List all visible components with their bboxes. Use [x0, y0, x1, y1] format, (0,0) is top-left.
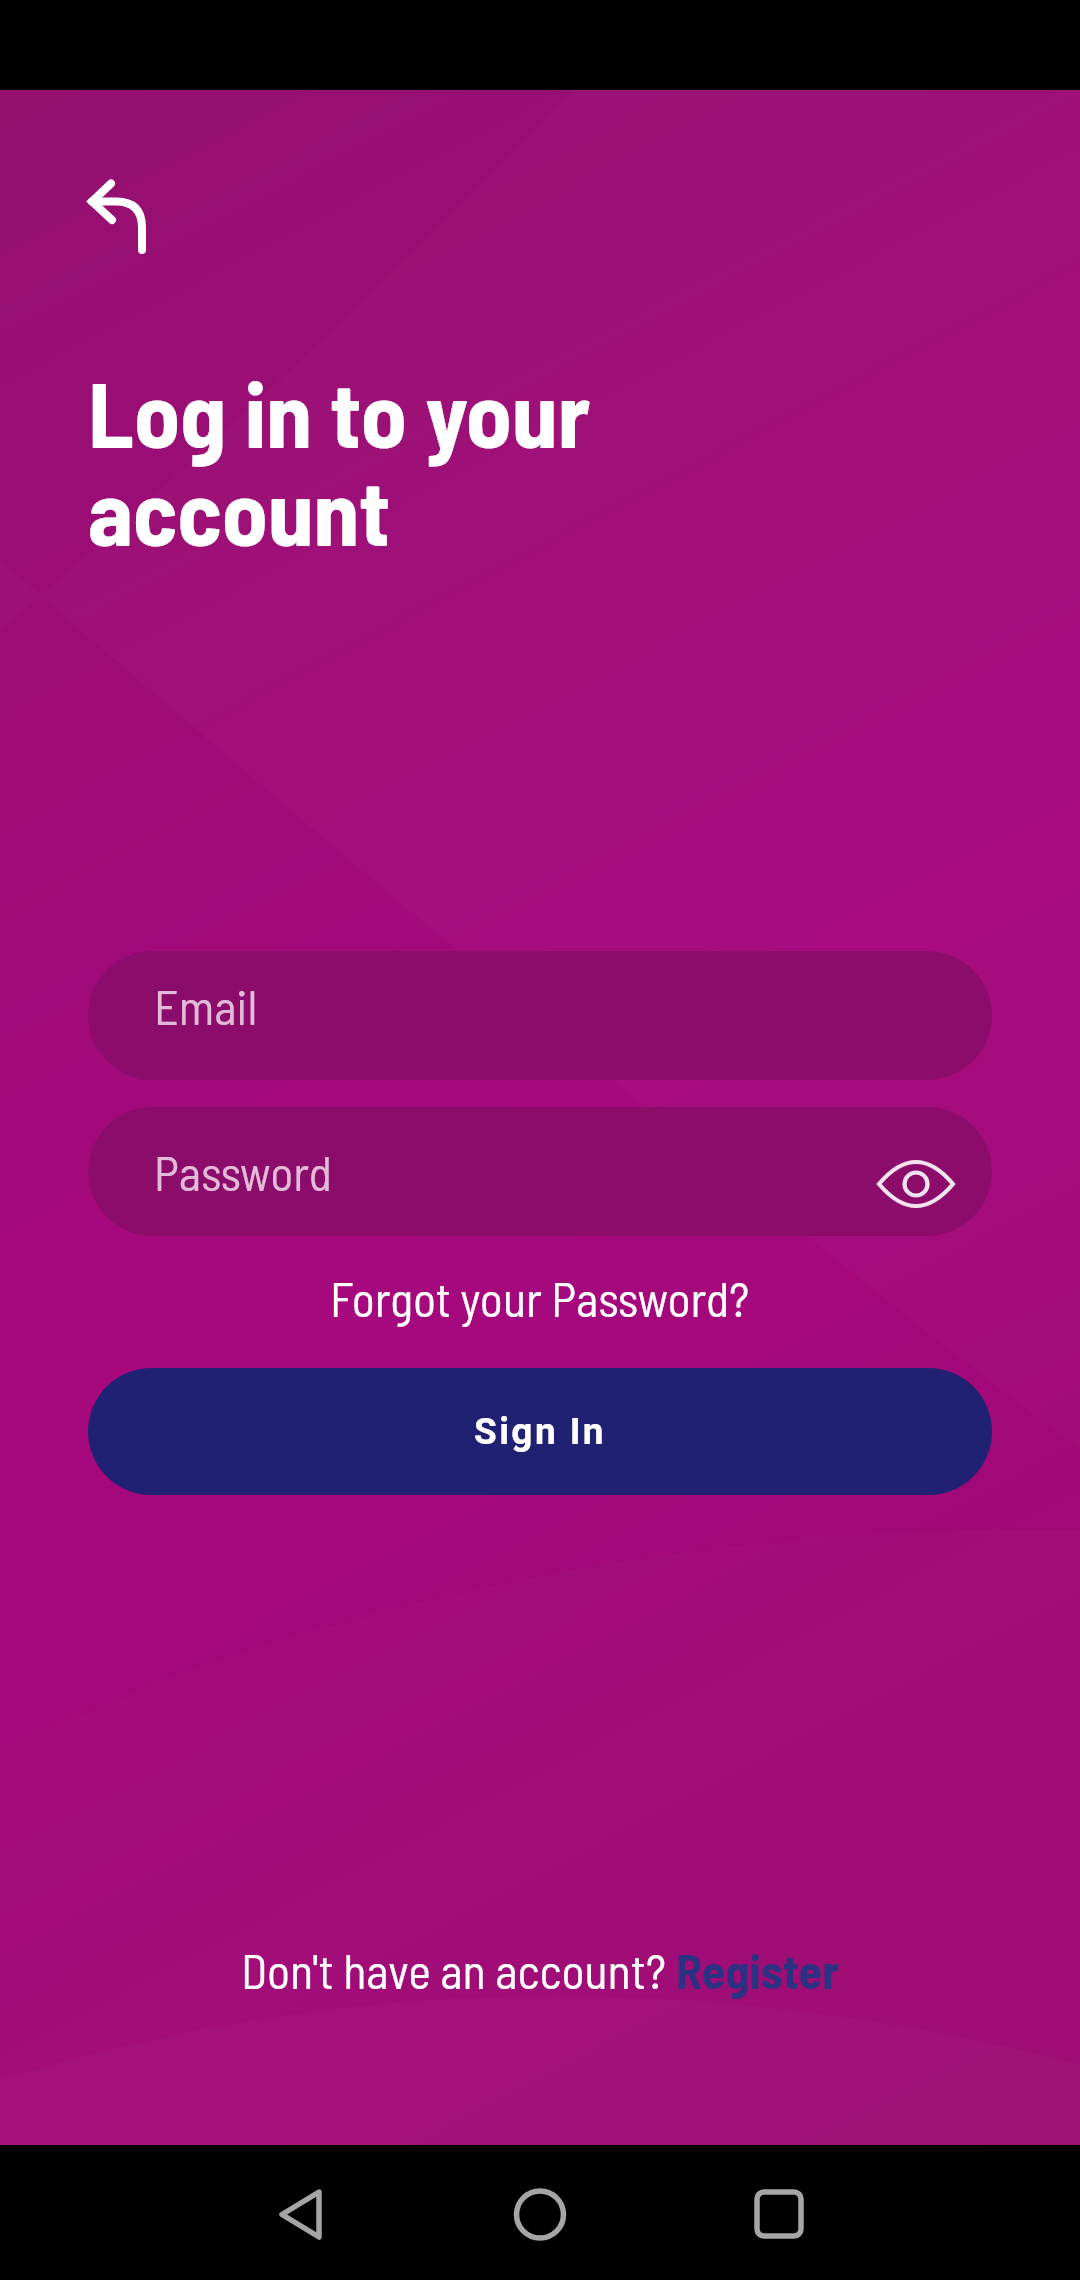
- staticText: Forgot your Password?: [330, 1269, 750, 1327]
- button[interactable]: [495, 2180, 585, 2258]
- staticText: Sign In: [474, 1410, 606, 1453]
- staticText: Register: [676, 1941, 840, 1999]
- button[interactable]: Forgot your Password?: [0, 1264, 1080, 1332]
- button[interactable]: [88, 951, 992, 1080]
- staticText: Don't have an account?: [241, 1941, 676, 1999]
- staticText: Email: [154, 977, 258, 1035]
- button[interactable]: [866, 1148, 966, 1220]
- button[interactable]: [257, 2180, 347, 2258]
- staticText: Password: [154, 1143, 332, 1201]
- button[interactable]: [88, 1107, 992, 1236]
- button[interactable]: Sign In: [88, 1368, 992, 1495]
- button[interactable]: Register: [676, 1941, 840, 1999]
- staticText: Log in to your account: [88, 356, 591, 564]
- button[interactable]: [60, 152, 172, 276]
- button[interactable]: [734, 2180, 824, 2258]
